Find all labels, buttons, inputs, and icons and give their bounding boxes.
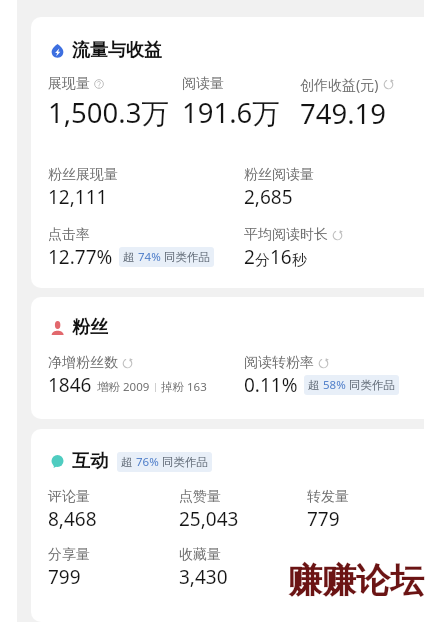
staticText: 12,111 [48,184,108,210]
button[interactable]: 粉丝 [51,316,108,339]
staticText: 191.6万 [182,94,280,132]
staticText: 16 [270,244,292,270]
staticText: 2,685 [244,184,293,210]
staticText: 平均阅读时长 [244,226,328,244]
staticText: 互动 [72,450,108,473]
staticText: 76% [136,454,159,470]
button[interactable]: 转发量 [307,488,349,532]
staticText: 粉丝阅读量 [244,166,314,184]
staticText: 掉粉 163 [161,379,207,395]
staticText: 779 [307,506,340,532]
staticText: 25,043 [179,506,239,532]
staticText: 增粉 2009 [97,379,150,395]
staticText: 点击率 [48,226,90,244]
button[interactable]: 点赞量 [179,488,307,532]
staticText: 粉丝 [72,316,108,339]
button[interactable]: 展现量 [48,75,182,132]
staticText: 1,500.3万 [48,94,169,132]
staticText: 分 [255,251,270,270]
staticText: 0.11% [244,372,298,398]
button[interactable]: 评论量 [48,488,179,532]
staticText: 超 [308,377,323,393]
staticText: 创作收益(元) [300,75,379,94]
staticText: 749.19 [300,95,387,132]
staticText: 3,430 [179,564,228,590]
staticText: 秒 [292,251,307,270]
staticText: 收藏量 [179,546,221,564]
staticText: 58% [323,377,346,393]
button[interactable]: 流量与收益 [51,39,162,62]
staticText: 799 [48,564,81,590]
staticText: 阅读量 [182,75,224,93]
staticText: 超 [123,249,138,265]
staticText: 流量与收益 [72,39,162,62]
staticText: 评论量 [48,488,90,506]
staticText: 8,468 [48,506,97,532]
staticText: 净增粉丝数 [48,354,118,372]
button[interactable]: 粉丝阅读量 [244,166,314,210]
staticText: 2 [244,244,255,270]
button[interactable]: 粉丝展现量 [48,166,244,210]
button[interactable]: 互动 [51,450,212,473]
staticText: 同类作品 [161,249,210,265]
staticText: 1846 [48,372,92,398]
staticText: 同类作品 [346,377,395,393]
button[interactable]: 净增粉丝数 [48,354,244,398]
staticText: 74% [138,249,161,265]
staticText: 超 [121,454,136,470]
button[interactable]: 平均阅读时长 [244,226,343,270]
button[interactable]: 创作收益(元) [300,75,394,132]
staticText: 转发量 [307,488,349,506]
staticText: 同类作品 [159,454,208,470]
staticText: 点赞量 [179,488,221,506]
staticText: 阅读转粉率 [244,354,314,372]
button[interactable]: 收藏量 [179,546,228,590]
staticText: 12.77% [48,244,113,270]
staticText: 粉丝展现量 [48,166,118,184]
staticText: 展现量 [48,75,90,93]
button[interactable]: 阅读转粉率 [244,354,399,398]
button[interactable]: 阅读量 [182,75,300,132]
staticText: 赚赚论坛 [288,559,424,602]
button[interactable]: 点击率 [48,226,244,270]
button[interactable]: 分享量 [48,546,179,590]
staticText: 分享量 [48,546,90,564]
